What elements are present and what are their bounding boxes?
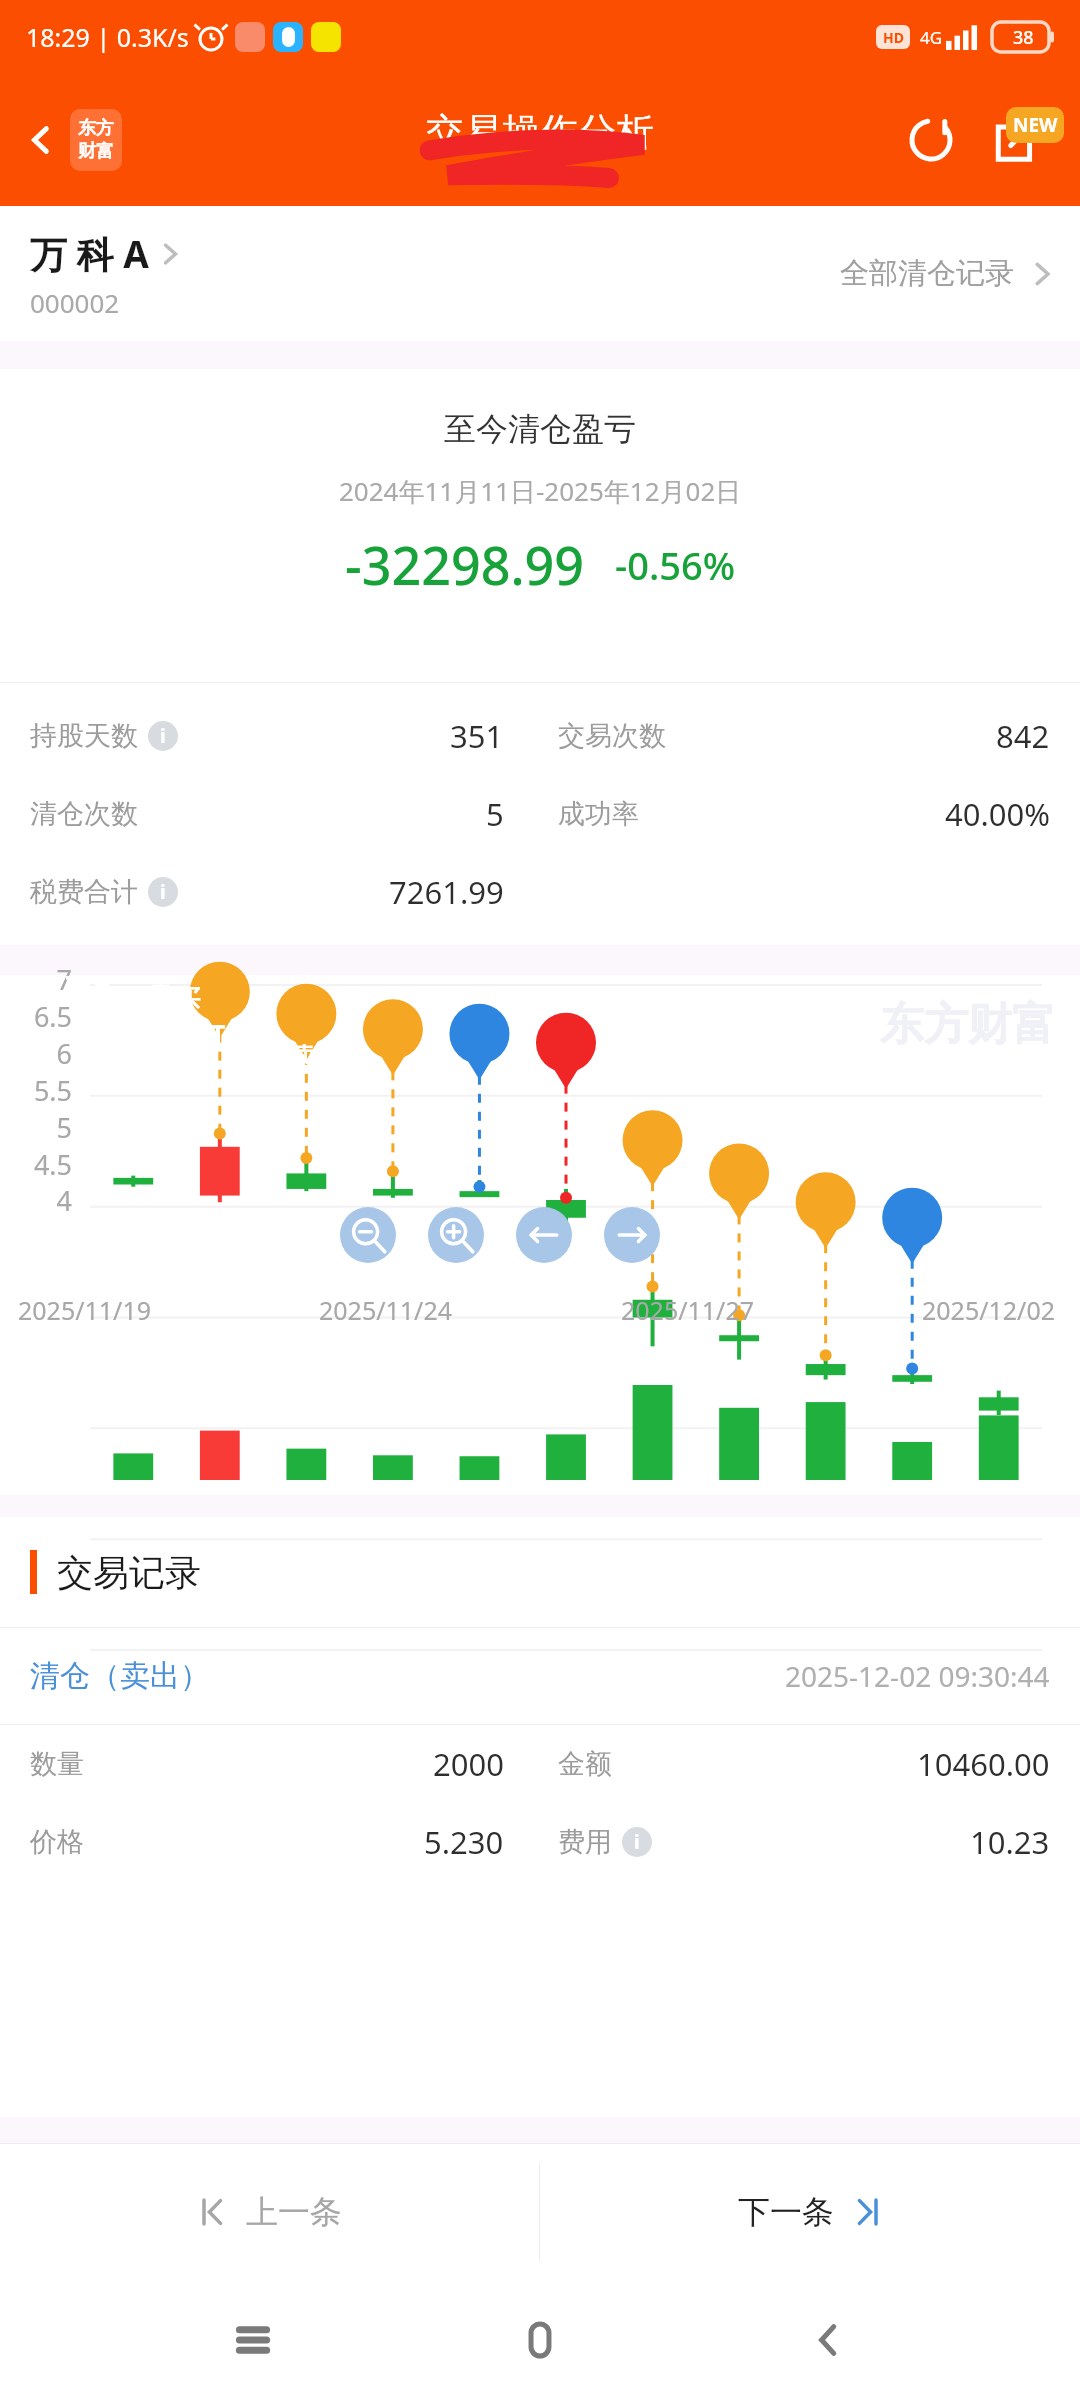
staticText: HD bbox=[883, 28, 904, 47]
button[interactable]: 万 科 A bbox=[30, 228, 181, 320]
button[interactable]: 上一条 bbox=[0, 2144, 539, 2280]
button[interactable]: Back bbox=[793, 2305, 863, 2375]
staticText: 2000 bbox=[433, 1743, 504, 1785]
staticText: 2025/11/24 bbox=[319, 1293, 453, 1327]
staticText: 交易操作分析 bbox=[426, 108, 654, 156]
staticText: T bbox=[261, 1037, 289, 1072]
staticText: 4 bbox=[0, 1182, 72, 1219]
staticText: 持股天数 bbox=[30, 719, 138, 753]
staticText: 交易记录 bbox=[57, 1550, 201, 1595]
button[interactable]: 清仓（卖出） bbox=[0, 1628, 1080, 1724]
staticText: 买 bbox=[175, 984, 203, 1013]
staticText: 费用 bbox=[558, 1825, 612, 1859]
staticText: 5 bbox=[0, 1109, 72, 1146]
staticText: 6 bbox=[0, 1035, 72, 1072]
staticText: 2024年11月11日-2025年12月02日 bbox=[339, 473, 742, 509]
staticText: 卖 bbox=[290, 1042, 318, 1071]
staticText: 2025/11/27 bbox=[621, 1293, 755, 1327]
button[interactable]: Refresh bbox=[900, 109, 962, 171]
staticText: i bbox=[634, 1829, 640, 1855]
staticText: 数量 bbox=[30, 1747, 84, 1781]
staticText: 5.5 bbox=[0, 1072, 72, 1109]
staticText: -0.56% bbox=[615, 539, 736, 591]
button[interactable]: Share bbox=[982, 109, 1056, 171]
staticText: 38 bbox=[1013, 25, 1034, 50]
staticText: 全部清仓记录 bbox=[840, 255, 1014, 292]
staticText: 清仓（卖出） bbox=[30, 1657, 210, 1695]
staticText: 5 bbox=[486, 793, 504, 835]
staticText: 7 bbox=[0, 961, 72, 998]
staticText: 至今清仓盈亏 bbox=[444, 409, 636, 449]
button[interactable]: ZoomIn bbox=[428, 1207, 484, 1263]
staticText: 5.230 bbox=[424, 1821, 504, 1863]
staticText: 351 bbox=[450, 715, 504, 757]
staticText: 4G bbox=[920, 26, 943, 49]
staticText: 税费合计 bbox=[30, 875, 138, 909]
staticText: 4.5 bbox=[0, 1146, 72, 1183]
staticText: T bbox=[117, 979, 145, 1014]
staticText: 2025/11/19 bbox=[18, 1293, 152, 1327]
staticText: 价格 bbox=[30, 1825, 84, 1859]
staticText: 2025-12-02 09:30:44 bbox=[785, 1657, 1050, 1695]
staticText: 18:29 | 0.3K/s bbox=[26, 20, 189, 54]
staticText: 842 bbox=[996, 715, 1050, 757]
button[interactable]: 全部清仓记录 bbox=[840, 255, 1054, 292]
button[interactable]: 下一条 bbox=[540, 2144, 1080, 2280]
staticText: 东方 bbox=[78, 117, 114, 140]
button[interactable]: Recents bbox=[218, 2305, 288, 2375]
staticText: 上一条 bbox=[246, 2192, 342, 2232]
button[interactable]: Right bbox=[604, 1207, 660, 1263]
staticText: 2025/12/02 bbox=[922, 1293, 1056, 1327]
staticText: 7261.99 bbox=[389, 871, 504, 913]
staticText: 下一条 bbox=[738, 2192, 834, 2232]
staticText: 财富 bbox=[78, 140, 114, 163]
staticText: T bbox=[204, 1016, 232, 1051]
button[interactable]: Left bbox=[516, 1207, 572, 1263]
staticText: -32298.99 bbox=[345, 529, 585, 600]
staticText: i bbox=[160, 723, 166, 749]
staticText: 40.00% bbox=[945, 793, 1050, 835]
staticText: 6.5 bbox=[0, 998, 72, 1035]
staticText: 万 科 A bbox=[30, 228, 149, 279]
staticText: 成功率 bbox=[558, 797, 639, 831]
button[interactable]: Home bbox=[505, 2305, 575, 2375]
staticText: 000002 bbox=[30, 285, 120, 320]
button[interactable]: ZoomOut bbox=[340, 1207, 396, 1263]
staticText: 10460.00 bbox=[917, 1743, 1050, 1785]
staticText: 10.23 bbox=[970, 1821, 1050, 1863]
staticText: T bbox=[59, 967, 87, 1002]
staticText: 金额 bbox=[558, 1747, 612, 1781]
staticText: NEW bbox=[1013, 112, 1058, 138]
staticText: 清仓次数 bbox=[30, 797, 138, 831]
button[interactable]: Back bbox=[20, 103, 128, 177]
staticText: i bbox=[160, 879, 166, 905]
staticText: 交易次数 bbox=[558, 719, 666, 753]
staticText: 东方财富 bbox=[880, 997, 1056, 1052]
